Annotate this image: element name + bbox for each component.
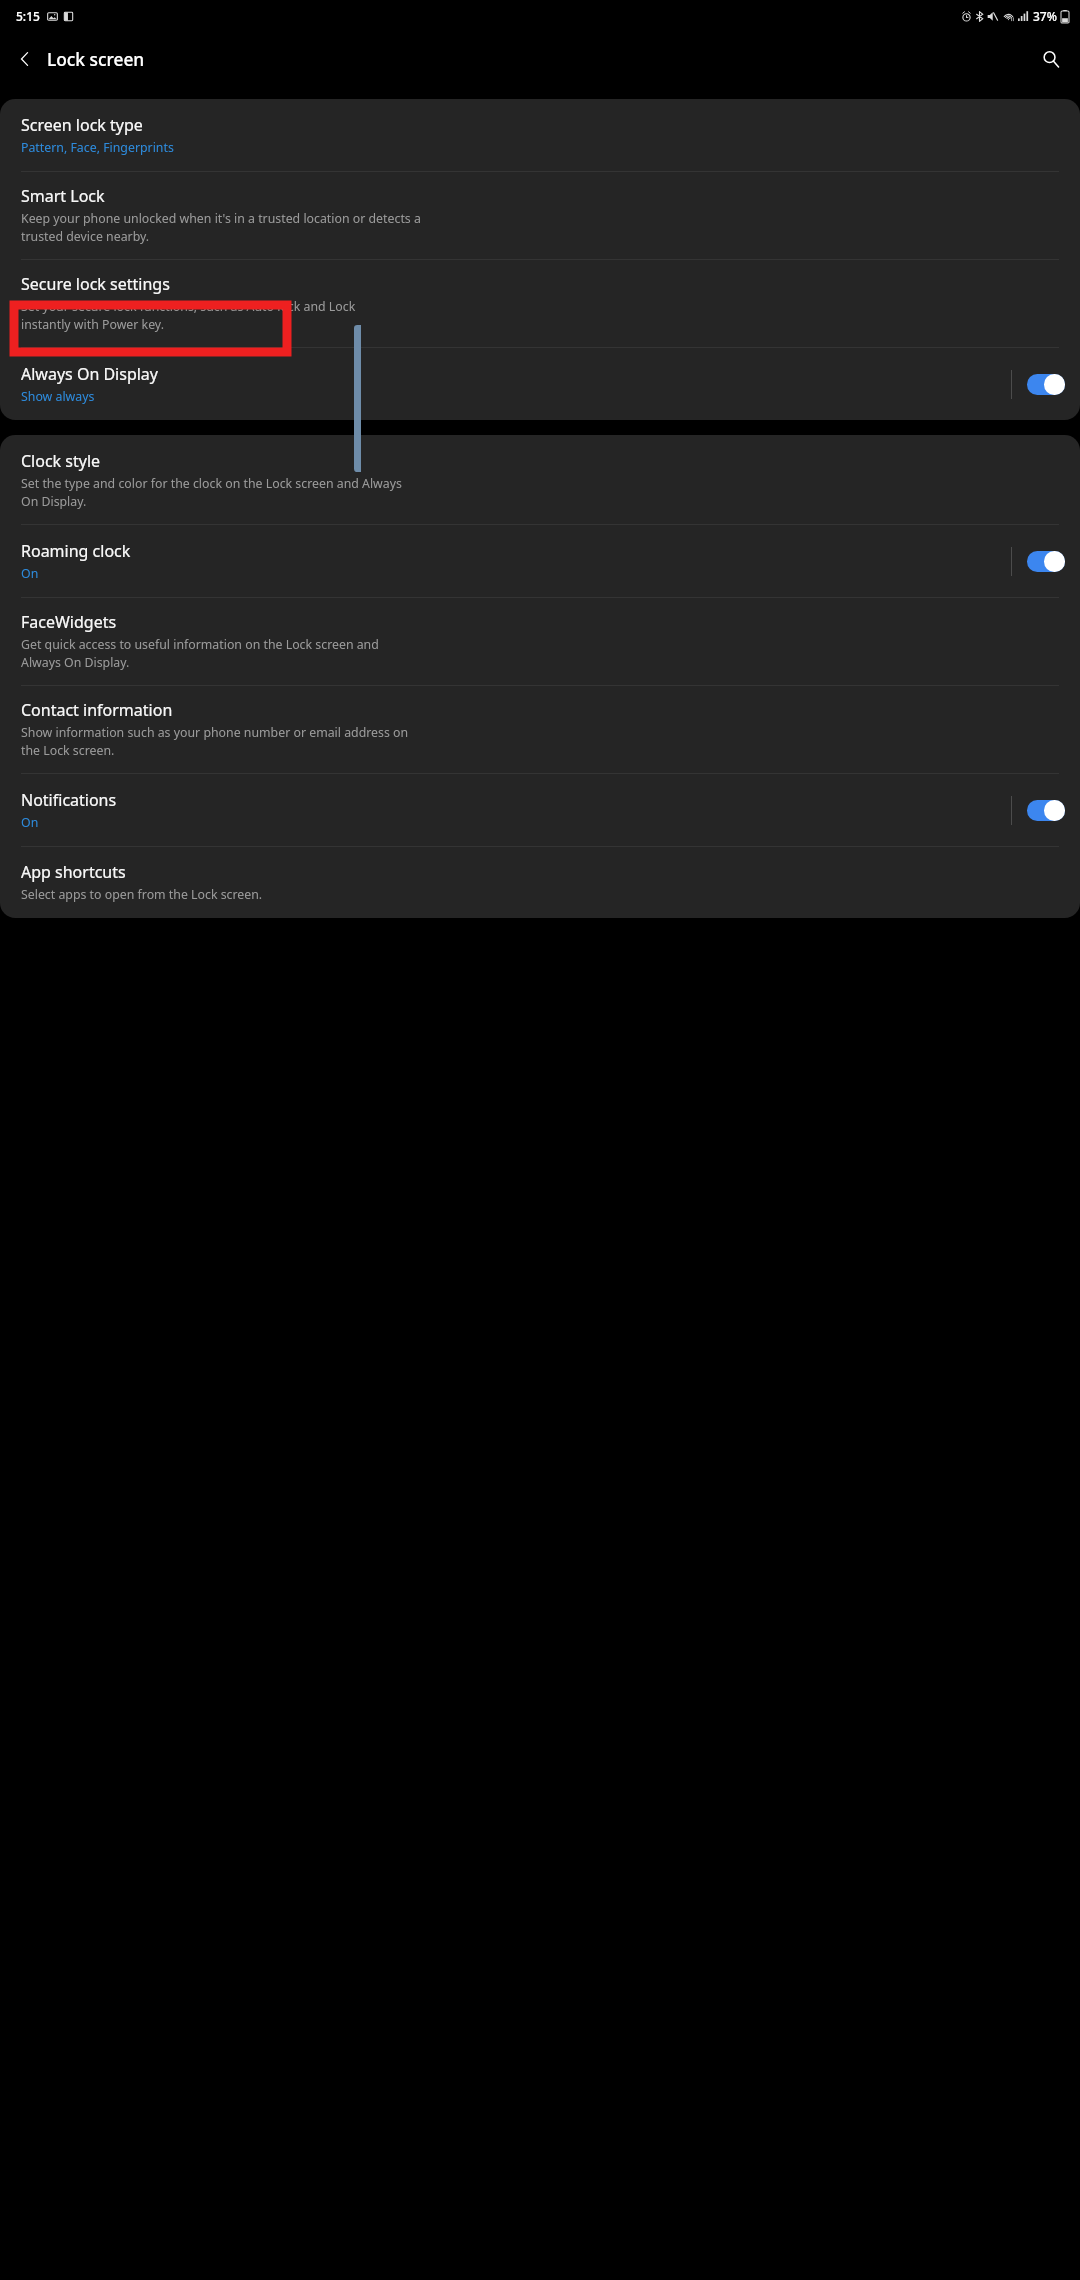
staticText: Set your secure lock functions, such as …	[21, 298, 356, 333]
staticText: Lock screen	[47, 47, 145, 71]
staticText: Show always	[21, 388, 95, 405]
button[interactable]: Notifications, on	[1012, 789, 1080, 832]
button[interactable]: App shortcuts	[0, 847, 1080, 918]
button[interactable]: Roaming clock, on	[1012, 540, 1080, 583]
button[interactable]: Search	[1034, 42, 1067, 75]
staticText: 5:15	[16, 8, 40, 24]
staticText: Smart Lock	[21, 185, 105, 207]
button[interactable]: Always On Display, on	[1012, 363, 1080, 406]
staticText: Always On Display	[21, 363, 159, 385]
button[interactable]: FaceWidgets	[0, 598, 1080, 685]
staticText: Set the type and color for the clock on …	[21, 475, 402, 510]
staticText: 37%	[1033, 8, 1057, 24]
button[interactable]: Navigate up	[8, 42, 41, 75]
button[interactable]: Roaming clock	[0, 525, 1011, 597]
staticText: Keep your phone unlocked when it's in a …	[21, 210, 421, 245]
staticText: Notifications	[21, 789, 117, 811]
staticText: On	[21, 814, 39, 831]
staticText: Contact information	[21, 699, 173, 721]
staticText: Get quick access to useful information o…	[21, 636, 379, 671]
button[interactable]: Secure lock settings	[0, 260, 1080, 347]
staticText: FaceWidgets	[21, 611, 117, 633]
button[interactable]: Screen lock type	[0, 99, 1080, 171]
button[interactable]: Smart Lock	[0, 172, 1080, 259]
staticText: Select apps to open from the Lock screen…	[21, 886, 263, 903]
staticText: Secure lock settings	[21, 273, 170, 295]
staticText: On	[21, 565, 39, 582]
button[interactable]: Notifications	[0, 774, 1011, 846]
staticText: Pattern, Face, Fingerprints	[21, 139, 174, 156]
button[interactable]: Always On Display	[0, 348, 1011, 420]
button[interactable]: Contact information	[0, 686, 1080, 773]
staticText: Screen lock type	[21, 114, 143, 136]
staticText: Clock style	[21, 450, 101, 472]
staticText: Show information such as your phone numb…	[21, 724, 409, 759]
staticText: Roaming clock	[21, 540, 131, 562]
button[interactable]: Clock style	[0, 435, 1080, 524]
staticText: App shortcuts	[21, 861, 126, 883]
